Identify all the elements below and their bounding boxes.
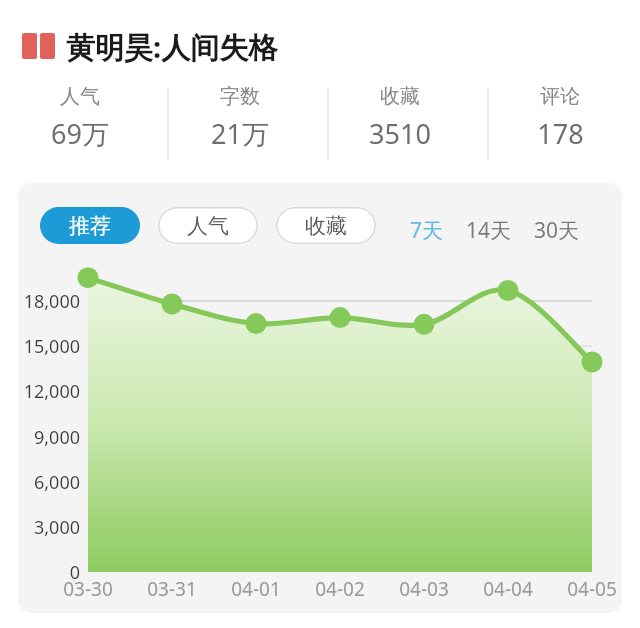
- button[interactable]: 评论: [480, 84, 640, 164]
- staticText: 178: [537, 115, 584, 152]
- staticText: 评论: [540, 84, 580, 109]
- button[interactable]: 人气: [0, 84, 160, 164]
- staticText: 04-05: [567, 576, 617, 602]
- staticText: 6,000: [33, 470, 80, 495]
- button[interactable]: 14天: [462, 213, 516, 248]
- staticText: 04-02: [315, 576, 365, 602]
- staticText: 3510: [369, 115, 431, 152]
- staticText: 7天: [410, 216, 444, 245]
- button[interactable]: 收藏: [320, 84, 480, 164]
- staticText: 12,000: [23, 379, 80, 404]
- staticText: 收藏: [380, 84, 420, 109]
- staticText: 字数: [220, 84, 260, 109]
- button[interactable]: 人气: [158, 207, 258, 244]
- button[interactable]: 7天: [406, 213, 448, 248]
- staticText: 69万: [51, 115, 109, 152]
- staticText: 黄明昊:人间失格: [66, 27, 278, 67]
- staticText: 15,000: [23, 334, 80, 359]
- staticText: 04-04: [483, 576, 533, 602]
- staticText: 推荐: [69, 213, 111, 239]
- staticText: 30天: [534, 216, 580, 245]
- staticText: 03-31: [147, 576, 197, 602]
- staticText: 人气: [187, 213, 229, 239]
- staticText: 3,000: [33, 515, 80, 540]
- button[interactable]: 推荐: [40, 207, 140, 244]
- other: Book: [22, 33, 55, 59]
- staticText: 03-30: [63, 576, 113, 602]
- button[interactable]: 字数: [160, 84, 320, 164]
- staticText: 收藏: [305, 213, 347, 239]
- staticText: 04-01: [231, 576, 281, 602]
- staticText: 人气: [60, 84, 100, 109]
- staticText: 14天: [466, 216, 512, 245]
- staticText: 0: [69, 560, 80, 585]
- staticText: 18,000: [23, 289, 80, 314]
- staticText: 21万: [211, 115, 269, 152]
- button[interactable]: 收藏: [276, 207, 376, 244]
- staticText: 04-03: [399, 576, 449, 602]
- staticText: 9,000: [33, 425, 80, 450]
- button[interactable]: 30天: [530, 213, 584, 248]
